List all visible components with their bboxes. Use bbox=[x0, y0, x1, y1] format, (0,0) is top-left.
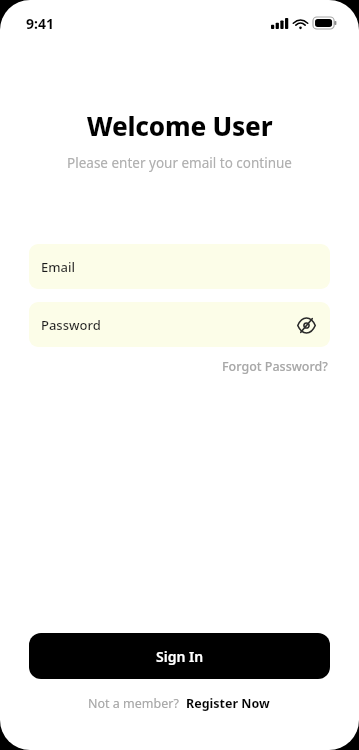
staticText: Forgot Password? bbox=[222, 358, 328, 375]
button[interactable]: Sign In bbox=[29, 633, 330, 679]
staticText: Welcome User bbox=[0, 108, 359, 143]
staticText: Not a member? bbox=[88, 695, 179, 712]
button[interactable]: Forgot Password? bbox=[220, 356, 330, 377]
staticText: Sign In bbox=[156, 647, 204, 666]
staticText: Please enter your email to continue bbox=[0, 154, 359, 172]
button[interactable]: Register Now bbox=[184, 693, 272, 714]
staticText: Register Now bbox=[186, 695, 270, 712]
staticText: Email bbox=[41, 258, 76, 276]
button[interactable]: Password bbox=[29, 302, 330, 347]
staticText: 9:41 bbox=[26, 14, 54, 33]
button[interactable]: Show password bbox=[293, 312, 319, 338]
staticText: Password bbox=[41, 316, 101, 334]
button[interactable]: Email bbox=[29, 244, 330, 289]
